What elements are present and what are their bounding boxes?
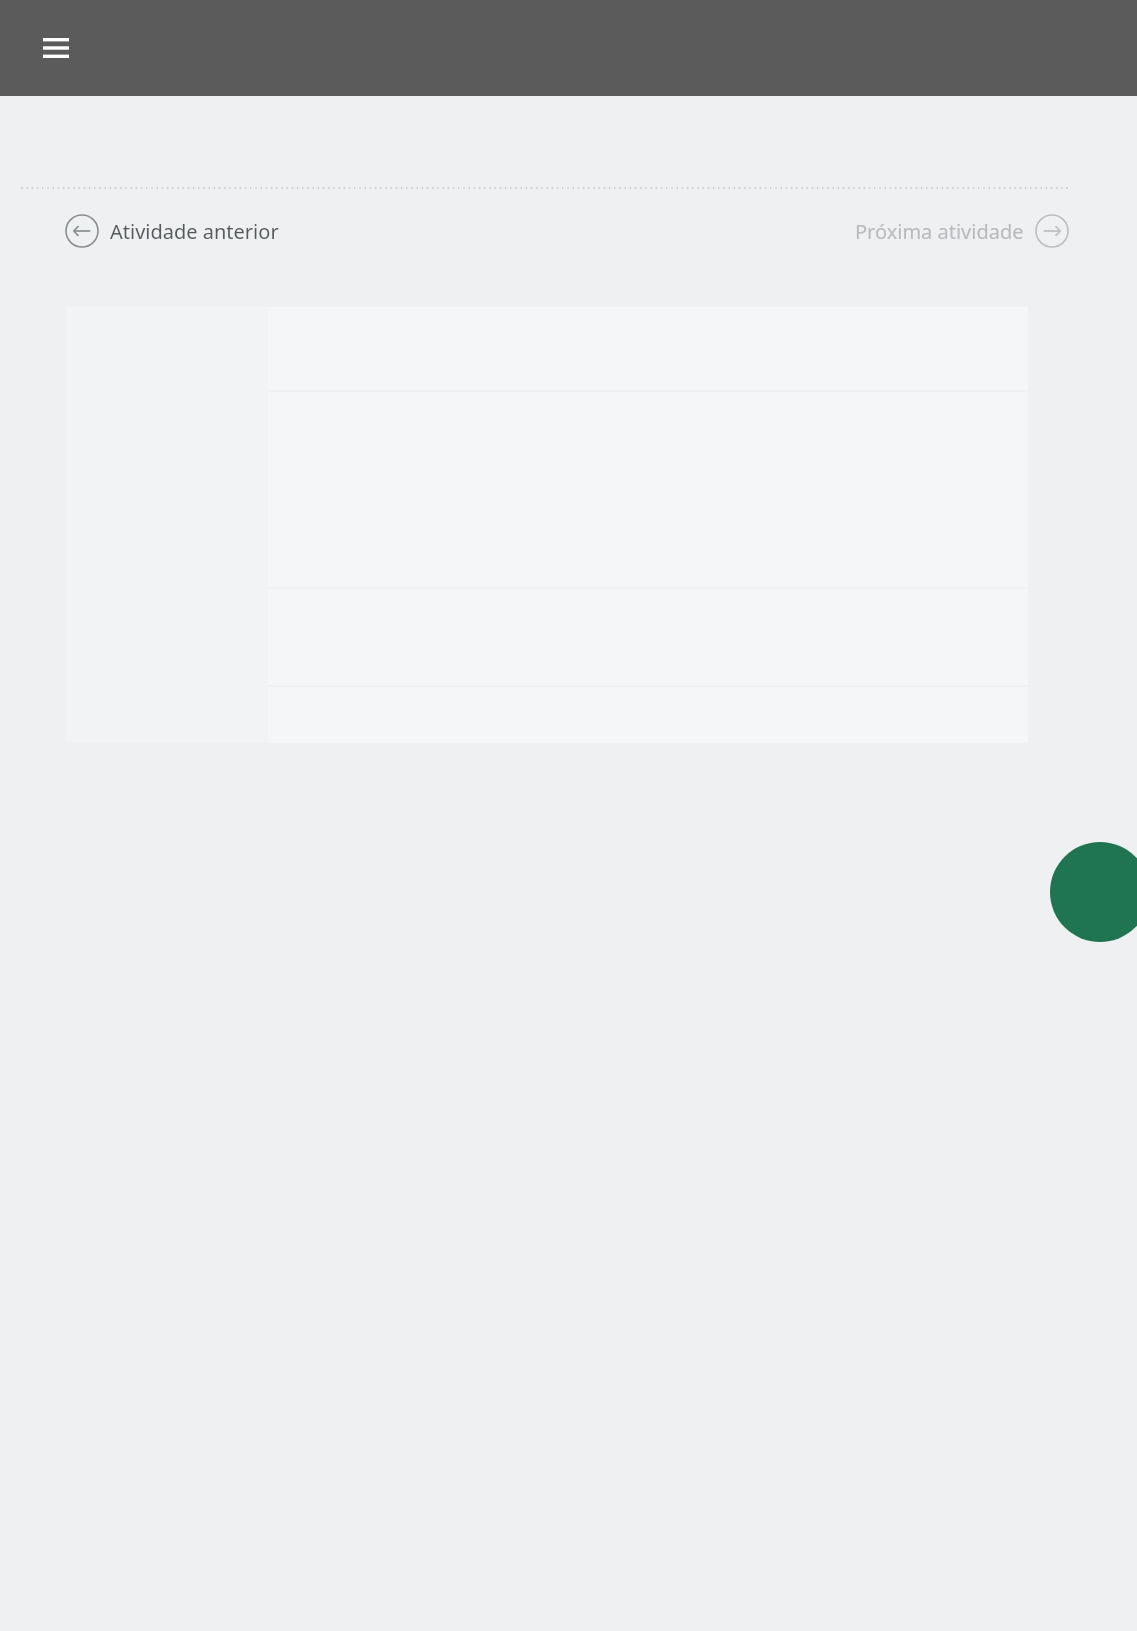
- button[interactable]: Menu: [30, 22, 82, 74]
- staticText: Próxima atividade: [855, 218, 1024, 245]
- button[interactable]: Próxima atividade: [847, 213, 1070, 249]
- staticText: Atividade anterior: [110, 218, 279, 245]
- button[interactable]: Atividade anterior: [64, 213, 287, 249]
- button[interactable]: Ajuda: [1050, 842, 1137, 942]
